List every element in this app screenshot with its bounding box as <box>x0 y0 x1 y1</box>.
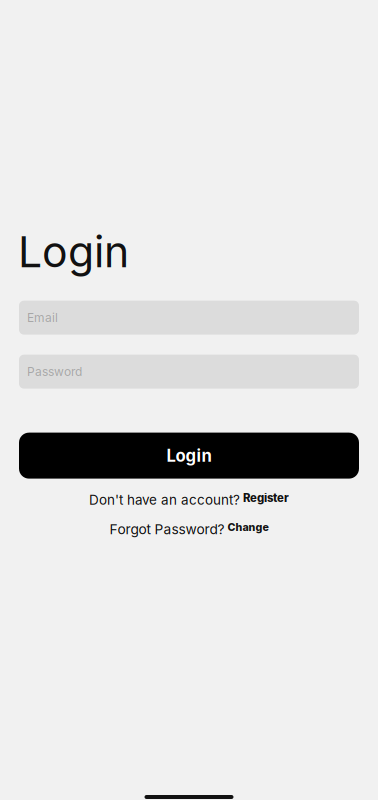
button[interactable]: Password <box>19 355 359 389</box>
button[interactable]: Change <box>227 523 268 536</box>
staticText: Password <box>27 364 82 379</box>
staticText: Login <box>166 445 211 466</box>
staticText: Email <box>27 310 58 325</box>
button[interactable]: Login <box>19 433 359 479</box>
staticText: Change <box>227 521 268 534</box>
button[interactable]: Register <box>243 493 289 507</box>
staticText: Login <box>18 226 129 278</box>
staticText: Don't have an account? <box>89 492 240 508</box>
staticText: Forgot Password? <box>109 521 224 537</box>
button[interactable]: Email <box>19 301 359 335</box>
staticText: Register <box>243 491 289 505</box>
